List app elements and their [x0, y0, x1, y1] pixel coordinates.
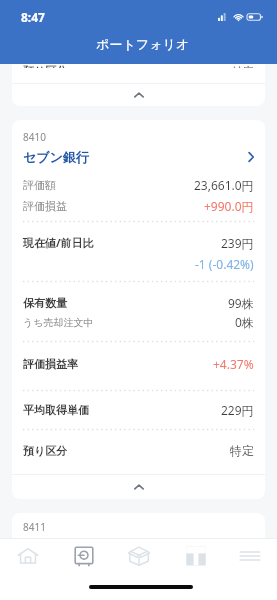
staticText: 特定: [232, 64, 254, 68]
staticText: 預り区分: [23, 64, 68, 68]
staticText: 8:47: [21, 9, 45, 25]
button[interactable]: Products: [116, 539, 161, 572]
staticText: 平均取得単価: [23, 403, 89, 417]
button[interactable]: Home: [5, 539, 50, 572]
staticText: -1 (-0.42%): [195, 256, 254, 272]
button[interactable]: Deposit: [61, 539, 106, 572]
staticText: 229円: [221, 402, 254, 418]
staticText: 評価額: [23, 178, 56, 192]
staticText: 0株: [235, 314, 254, 330]
staticText: 8410: [23, 130, 46, 144]
staticText: うち売却注文中: [23, 316, 94, 329]
staticText: 特定: [230, 443, 254, 458]
staticText: 8411: [23, 520, 46, 534]
staticText: 239円: [221, 235, 254, 251]
staticText: 評価損益率: [23, 357, 78, 371]
staticText: 99株: [228, 295, 254, 311]
button[interactable]: Collapse: [12, 475, 265, 499]
staticText: 評価損益: [23, 199, 67, 213]
staticText: セブン銀行: [23, 149, 89, 165]
staticText: 23,661.0円: [194, 177, 254, 193]
staticText: +990.0円: [204, 198, 254, 214]
staticText: 保有数量: [23, 296, 67, 310]
staticText: 預り区分: [23, 444, 68, 458]
button[interactable]: Collapse: [12, 84, 265, 106]
staticText: +4.37%: [213, 356, 254, 372]
staticText: 現在値/前日比: [23, 235, 94, 250]
staticText: ポートフォリオ: [96, 36, 190, 52]
button[interactable]: Portfolio: [173, 539, 218, 572]
button[interactable]: Menu: [227, 539, 272, 572]
button[interactable]: セブン銀行: [23, 148, 254, 166]
